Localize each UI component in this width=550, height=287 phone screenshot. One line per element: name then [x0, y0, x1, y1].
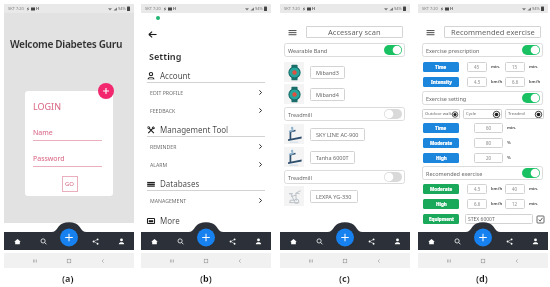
staticText: High	[436, 155, 447, 161]
staticText: EDIT PROFILE	[150, 89, 184, 96]
button[interactable]: Recents	[169, 258, 175, 264]
button[interactable]: Home	[342, 258, 348, 264]
staticText: Accessary scan	[328, 27, 381, 37]
staticText: min.	[529, 64, 539, 70]
button[interactable]: Miband4	[284, 84, 410, 104]
button[interactable]: Treadmil	[505, 109, 544, 119]
button[interactable]: Back	[514, 258, 520, 264]
staticText: Management Tool	[160, 124, 229, 135]
button[interactable]: Back	[376, 258, 382, 264]
button[interactable]: Profile	[108, 232, 134, 250]
button[interactable]: Back	[100, 258, 106, 264]
staticText: Databases	[160, 178, 200, 189]
button[interactable]: Add	[336, 229, 354, 247]
button[interactable]: Share	[82, 232, 108, 250]
staticText: (d)	[476, 272, 488, 284]
button[interactable]: Home	[480, 258, 486, 264]
button[interactable]: REMINDER	[141, 137, 271, 155]
button[interactable]: Search	[30, 232, 56, 250]
button[interactable]: Profile	[245, 232, 271, 250]
staticText: Treadmill	[288, 111, 312, 118]
button[interactable]: FEEDBACK	[141, 101, 271, 119]
staticText: Tanha 6000T	[316, 154, 349, 161]
button[interactable]: Add	[98, 83, 114, 99]
staticText: 12	[512, 201, 518, 207]
button[interactable]: Intensity	[423, 77, 459, 87]
staticText: min.	[529, 186, 539, 192]
staticText: Moderate	[430, 186, 453, 192]
staticText: min.	[507, 125, 517, 131]
button[interactable]: Treadmill	[284, 107, 405, 121]
button[interactable]: Add	[474, 229, 492, 247]
staticText: MANAGEMENT	[150, 197, 187, 204]
staticText: min.	[491, 64, 501, 70]
button[interactable]: Time	[423, 62, 459, 72]
button[interactable]: LEXPA YG-330	[284, 186, 410, 206]
button[interactable]: Add	[197, 229, 215, 247]
button[interactable]: Recommended exercise	[444, 26, 541, 38]
button[interactable]: Home	[280, 232, 306, 250]
button[interactable]: Home	[203, 258, 209, 264]
button[interactable]: Tanha 6000T	[284, 147, 410, 167]
button[interactable]: Home	[418, 232, 444, 250]
button[interactable]: Time	[423, 123, 459, 133]
button[interactable]: Share	[219, 232, 245, 250]
staticText: ALARM	[150, 161, 168, 168]
button[interactable]: Recents	[308, 258, 314, 264]
button[interactable]: Back	[237, 258, 243, 264]
button[interactable]: Recents	[32, 258, 38, 264]
button[interactable]: Home	[66, 258, 72, 264]
button[interactable]: Menu	[288, 28, 297, 37]
button[interactable]: Moderate	[423, 138, 459, 148]
staticText: Wearable Band	[288, 47, 328, 54]
button[interactable]: Add	[60, 229, 78, 247]
button[interactable]: EDIT PROFILE	[141, 83, 271, 101]
button[interactable]: GO	[62, 176, 78, 192]
button[interactable]: Management Tool	[141, 123, 271, 137]
staticText: 6.6	[474, 201, 481, 207]
button[interactable]: Wearable Band	[284, 43, 405, 57]
button[interactable]: Home	[141, 232, 167, 250]
button[interactable]: Equipment checkbox	[537, 216, 544, 223]
button[interactable]: ALARM	[141, 155, 271, 173]
button[interactable]: Accessary scan	[306, 26, 403, 38]
button[interactable]: MANAGEMENT	[141, 191, 271, 209]
button[interactable]: Recents	[446, 258, 452, 264]
button[interactable]: High	[423, 199, 459, 209]
button[interactable]: Exercise setting	[422, 91, 543, 105]
staticText: Recomended exercise	[426, 170, 483, 177]
staticText: 60	[486, 125, 492, 131]
button[interactable]: Search	[306, 232, 332, 250]
staticText: 80	[486, 140, 492, 146]
button[interactable]: Moderate	[423, 184, 459, 194]
button[interactable]: Search	[444, 232, 470, 250]
button[interactable]: Exercise prescription	[422, 43, 543, 57]
button[interactable]: Share	[496, 232, 522, 250]
button[interactable]: Search	[167, 232, 193, 250]
button[interactable]: Databases	[141, 177, 271, 191]
button[interactable]: Back	[148, 30, 157, 39]
button[interactable]: High	[423, 153, 459, 163]
button[interactable]: Profile	[384, 232, 410, 250]
button[interactable]: Account	[141, 69, 271, 83]
button[interactable]: Menu	[426, 28, 435, 37]
staticText: Exercise prescription	[426, 47, 480, 54]
staticText: H	[173, 6, 177, 11]
button[interactable]: Equipment	[423, 214, 459, 224]
button[interactable]: Home	[4, 232, 30, 250]
staticText: min.	[529, 201, 539, 207]
button[interactable]: Share	[358, 232, 384, 250]
button[interactable]: SKY LINE AC-900	[284, 124, 410, 144]
button[interactable]: Recomended exercise	[422, 166, 543, 180]
staticText: Exercise setting	[426, 95, 467, 102]
staticText: Time	[435, 64, 447, 70]
button[interactable]: Outdoor walk	[422, 109, 460, 119]
staticText: Intensity	[431, 79, 452, 85]
button[interactable]: Treadmill	[284, 170, 405, 184]
staticText: %	[507, 140, 511, 146]
button[interactable]: Miband3	[284, 62, 410, 82]
button[interactable]: More	[141, 214, 271, 227]
staticText: SKT 7:20	[145, 6, 161, 11]
button[interactable]: Cycle	[463, 109, 502, 119]
button[interactable]: Profile	[522, 232, 548, 250]
